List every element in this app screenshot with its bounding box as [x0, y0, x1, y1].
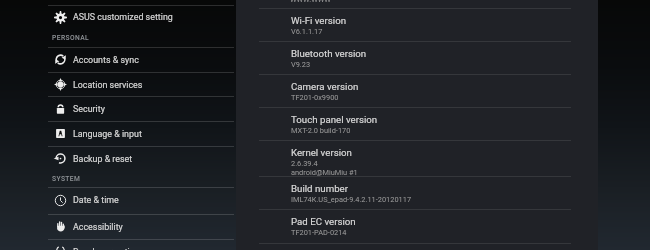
staticText: Kernel version [291, 147, 352, 158]
staticText: Date & time [73, 195, 119, 205]
staticText: Pad EC version [291, 216, 356, 227]
staticText: V9.23 [291, 60, 311, 69]
button[interactable]: Language & input [0, 121, 235, 146]
staticText: ASUS customized setting [73, 12, 173, 22]
button[interactable]: Accessibility [0, 214, 235, 239]
button[interactable]: Camera version [236, 74, 598, 107]
button[interactable]: Accounts & sync [0, 47, 235, 72]
staticText: Accessibility [73, 222, 123, 232]
button[interactable]: Bluetooth version [236, 41, 598, 73]
button[interactable]: Wi-Fi version [236, 8, 598, 42]
button[interactable]: Build number [236, 176, 598, 209]
button[interactable]: Developer options [0, 239, 235, 250]
staticText: IML74K.US_epad-9.4.2.11-20120117 [291, 195, 412, 204]
staticText: Security [73, 104, 105, 114]
button[interactable]: Kernel version [236, 140, 598, 177]
staticText: TF201-PAD-0214 [291, 228, 347, 237]
staticText: MXT-2.0 build-170 [291, 126, 351, 135]
staticText: TF201-0x9900 [291, 93, 339, 102]
staticText: Bluetooth version [291, 48, 367, 59]
staticText: Camera version [291, 81, 359, 92]
staticText: android@MiuMiu #1 [291, 168, 358, 177]
button[interactable]: Touch panel version [236, 107, 598, 140]
button[interactable]: ASUS customized setting [0, 5, 235, 29]
staticText: SYSTEM [52, 175, 81, 183]
staticText: 2.6.39.4 [291, 159, 318, 168]
staticText: Backup & reset [73, 154, 133, 164]
button[interactable]: Location services [0, 72, 235, 97]
staticText: V6.1.1.17 [291, 27, 323, 36]
staticText: Touch panel version [291, 114, 378, 125]
staticText: Build number [291, 183, 348, 194]
staticText: WWW.WWW [290, 0, 331, 4]
staticText: Developer options [73, 247, 145, 250]
button[interactable]: Backup & reset [0, 146, 235, 171]
staticText: Wi-Fi version [291, 15, 347, 26]
button[interactable]: Date & time [0, 187, 235, 213]
button[interactable]: Pad EC version [236, 209, 598, 242]
staticText: Accounts & sync [73, 55, 139, 65]
staticText: Location services [73, 80, 143, 90]
staticText: Language & input [73, 129, 142, 139]
button[interactable]: Security [0, 96, 235, 121]
staticText: PERSONAL [52, 34, 90, 42]
